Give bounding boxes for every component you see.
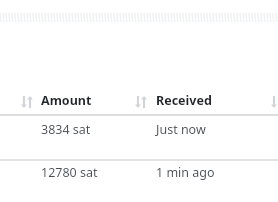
button[interactable]: Sort column <box>271 96 278 108</box>
button[interactable]: 3834 sat <box>0 116 278 159</box>
button[interactable]: Sort column <box>135 96 147 108</box>
staticText: Just now <box>156 121 206 138</box>
button[interactable]: Sort column <box>21 88 101 114</box>
staticText: Received <box>156 92 212 109</box>
staticText: 1 min ago <box>156 164 215 181</box>
staticText: 3834 sat <box>41 121 91 138</box>
button[interactable]: Sort column <box>135 88 216 114</box>
staticText: Amount <box>41 92 92 109</box>
staticText: 12780 sat <box>41 164 98 181</box>
button[interactable]: Sort column <box>21 96 33 108</box>
button[interactable]: 12780 sat <box>0 160 278 202</box>
